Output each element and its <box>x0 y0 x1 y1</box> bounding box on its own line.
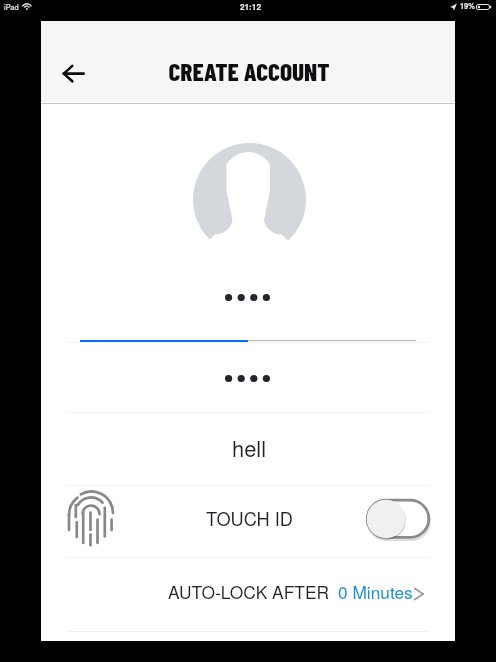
staticText: 21:12 <box>240 1 261 13</box>
staticText: iPad <box>4 2 19 13</box>
button[interactable]: Back <box>49 50 95 96</box>
button[interactable]: Change profile photo <box>193 143 306 256</box>
staticText: 0 Minutes <box>338 579 413 604</box>
button[interactable]: AUTO-LOCK AFTER <box>41 558 455 631</box>
button[interactable] <box>41 343 455 412</box>
button[interactable]: TOUCH ID <box>41 486 455 557</box>
staticText: TOUCH ID <box>206 505 293 531</box>
staticText: AUTO-LOCK AFTER <box>168 579 330 604</box>
button[interactable]: Touch ID toggle, off <box>361 494 435 544</box>
button[interactable]: hell <box>41 411 455 483</box>
staticText: CREATE ACCOUNT <box>168 56 330 86</box>
staticText: hell <box>232 432 267 463</box>
button[interactable] <box>41 269 455 341</box>
staticText: 19% <box>460 1 475 12</box>
